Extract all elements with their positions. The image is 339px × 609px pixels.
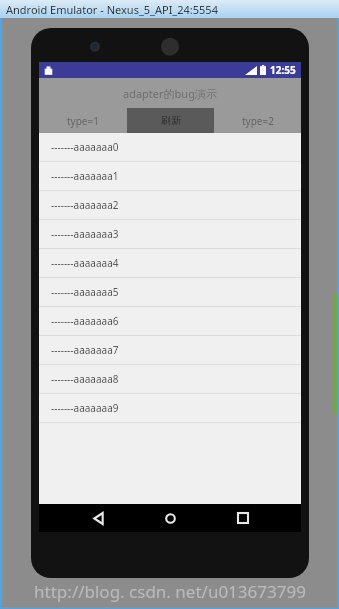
staticText: -------aaaaaaa7 [51, 343, 119, 357]
staticText: type=1 [67, 114, 99, 128]
staticText: -------aaaaaaa9 [51, 401, 119, 415]
staticText: -------aaaaaaa3 [51, 227, 119, 241]
staticText: -------aaaaaaa4 [51, 256, 119, 270]
button[interactable]: -------aaaaaaa3 [39, 220, 301, 249]
button[interactable]: -------aaaaaaa2 [39, 191, 301, 220]
button[interactable]: type=2 [214, 108, 301, 133]
staticText: Android Emulator - Nexus_5_API_24:5554 [6, 2, 218, 17]
staticText: -------aaaaaaa5 [51, 285, 119, 299]
button[interactable]: Recent apps [229, 504, 257, 532]
staticText: -------aaaaaaa1 [51, 169, 119, 183]
button[interactable]: Home [156, 504, 184, 532]
button[interactable]: 刷新 [127, 108, 214, 133]
staticText: 12:55 [270, 63, 296, 77]
staticText: -------aaaaaaa2 [51, 198, 119, 212]
button[interactable]: type=1 [39, 108, 127, 133]
staticText: -------aaaaaaa6 [51, 314, 119, 328]
staticText: http://blog. csdn. net/u013673799 [34, 580, 306, 603]
button[interactable]: -------aaaaaaa1 [39, 162, 301, 191]
button[interactable]: -------aaaaaaa9 [39, 394, 301, 423]
staticText: adapter的bug演示 [123, 86, 217, 101]
button[interactable]: -------aaaaaaa7 [39, 336, 301, 365]
staticText: -------aaaaaaa8 [51, 372, 119, 386]
button[interactable]: -------aaaaaaa6 [39, 307, 301, 336]
button[interactable]: -------aaaaaaa4 [39, 249, 301, 278]
staticText: -------aaaaaaa0 [51, 140, 119, 154]
staticText: type=2 [242, 114, 274, 128]
button[interactable]: -------aaaaaaa0 [39, 133, 301, 162]
button[interactable]: -------aaaaaaa5 [39, 278, 301, 307]
button[interactable]: -------aaaaaaa8 [39, 365, 301, 394]
staticText: 刷新 [161, 114, 181, 127]
button[interactable]: Back [84, 504, 112, 532]
